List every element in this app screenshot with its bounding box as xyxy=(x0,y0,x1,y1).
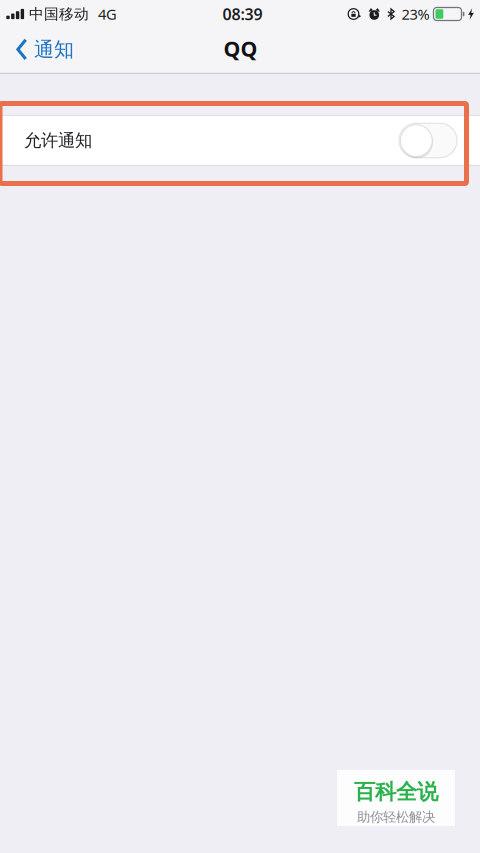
staticText: 通知 xyxy=(34,37,74,62)
staticText: 08:39 xyxy=(222,3,262,25)
staticText: 4G xyxy=(98,4,117,24)
staticText: QQ xyxy=(223,34,257,63)
staticText: 允许通知 xyxy=(24,130,92,151)
button[interactable]: 允许通知 xyxy=(399,123,457,158)
button[interactable]: 通知 xyxy=(0,28,86,74)
staticText: 百科全说 xyxy=(354,779,438,805)
staticText: 23% xyxy=(401,4,429,24)
staticText: 助你轻松解决 xyxy=(357,809,435,825)
staticText: 中国移动 xyxy=(29,5,89,23)
